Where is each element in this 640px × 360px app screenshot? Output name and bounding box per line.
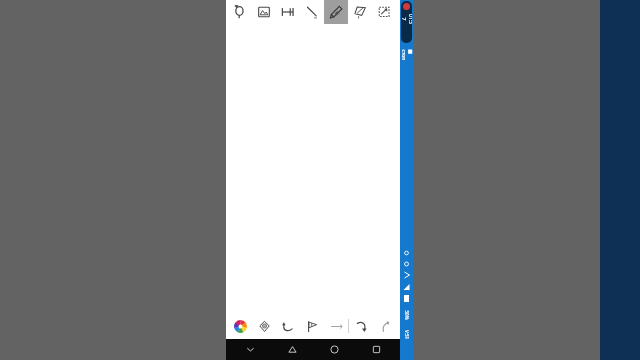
button[interactable]: Redo [349,313,373,339]
button[interactable]: Slider [324,313,348,339]
button[interactable]: Flag [300,313,324,339]
button[interactable]: Hide keyboard [232,339,268,360]
button[interactable]: Pen [324,0,348,24]
button[interactable]: Line [300,0,324,24]
button[interactable]: Text [276,0,300,24]
staticText: ■ стоп [399,49,413,62]
button[interactable]: Image [252,0,276,24]
button[interactable]: Back [274,339,310,360]
staticText: V:51 [404,330,410,340]
button[interactable]: Lasso select [228,0,252,24]
button[interactable]: Brush settings [252,313,276,339]
button[interactable]: Transform [348,0,372,24]
staticText: 50% [403,310,409,319]
button[interactable]: Forward [373,313,397,339]
button[interactable]: Crop [372,0,396,24]
button[interactable]: Recents [358,339,394,360]
button[interactable]: Home [316,339,352,360]
button[interactable]: Colour picker [228,313,252,339]
staticText: 01:37 [401,13,412,24]
button[interactable]: Undo [276,313,300,339]
